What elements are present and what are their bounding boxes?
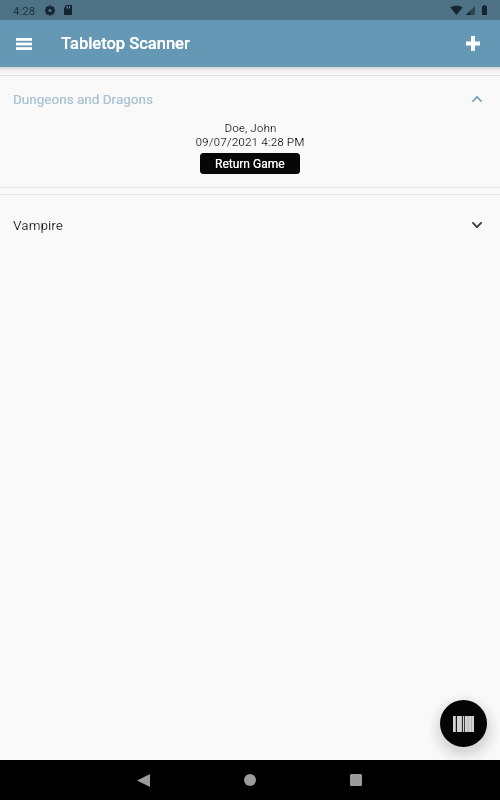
staticText: Dungeons and Dragons	[13, 91, 153, 107]
staticText: 4:28	[13, 4, 36, 17]
staticText: Return Game	[215, 157, 285, 171]
button[interactable]: Dungeons and Dragons	[0, 76, 500, 121]
button[interactable]: Back	[119, 760, 167, 800]
staticText: Doe, John	[224, 121, 277, 135]
button[interactable]: Scan barcode	[440, 700, 487, 747]
button[interactable]: Return Game	[200, 153, 300, 174]
button[interactable]: Add	[449, 20, 497, 67]
button[interactable]: Recents	[332, 760, 380, 800]
staticText: Vampire	[13, 217, 63, 233]
button[interactable]: Home	[226, 760, 274, 800]
button[interactable]: Menu	[0, 20, 48, 67]
staticText: Tabletop Scanner	[61, 34, 190, 53]
button[interactable]: Vampire	[0, 195, 500, 254]
staticText: 09/07/2021 4:28 PM	[195, 135, 305, 149]
